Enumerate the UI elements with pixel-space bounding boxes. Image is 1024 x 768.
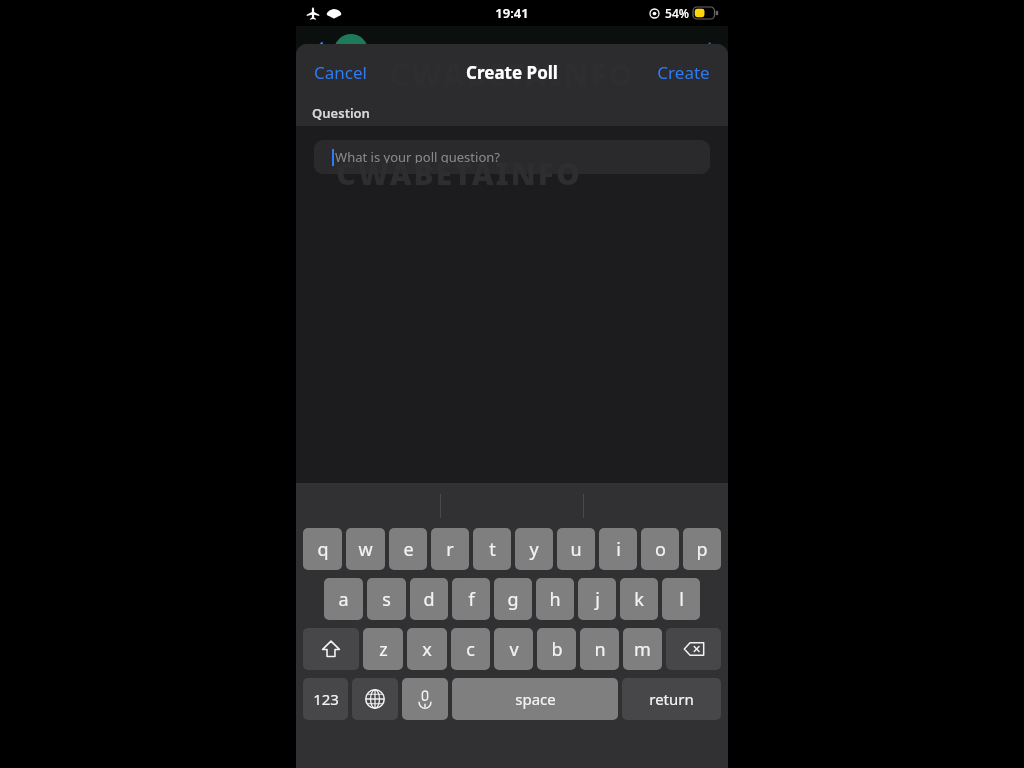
button[interactable]: e xyxy=(389,528,427,570)
staticText: What is your poll question? xyxy=(335,148,500,166)
staticText: s xyxy=(382,587,391,612)
staticText: 19:41 xyxy=(495,4,529,22)
staticText: g xyxy=(507,587,519,612)
button[interactable]: v xyxy=(494,628,533,670)
staticText: j xyxy=(595,587,600,612)
staticText: Question xyxy=(312,104,370,122)
button[interactable]: g xyxy=(494,578,532,620)
staticText: d xyxy=(423,587,435,612)
staticText: Cancel xyxy=(314,61,367,84)
button[interactable]: Backspace xyxy=(666,628,721,670)
staticText: e xyxy=(403,537,414,562)
button[interactable]: Switch keyboard xyxy=(352,678,398,720)
button[interactable]: a xyxy=(324,578,363,620)
button[interactable]: q xyxy=(303,528,342,570)
staticText: y xyxy=(529,537,539,562)
staticText: x xyxy=(422,637,432,662)
button[interactable]: j xyxy=(578,578,616,620)
staticText: v xyxy=(509,637,519,662)
staticText: a xyxy=(338,587,349,612)
staticText: l xyxy=(679,587,684,612)
button[interactable]: return xyxy=(622,678,721,720)
button[interactable]: What is your poll question? xyxy=(314,140,710,174)
button[interactable]: u xyxy=(557,528,595,570)
staticText: m xyxy=(634,637,651,662)
staticText: q xyxy=(317,537,329,562)
button[interactable]: s xyxy=(367,578,406,620)
button[interactable]: 123 xyxy=(303,678,348,720)
button[interactable]: k xyxy=(620,578,658,620)
button[interactable]: y xyxy=(515,528,553,570)
button[interactable]: d xyxy=(410,578,448,620)
staticText: i xyxy=(616,537,621,562)
button[interactable]: Cancel xyxy=(296,49,385,96)
button[interactable]: o xyxy=(641,528,679,570)
staticText: b xyxy=(551,637,563,662)
staticText: h xyxy=(549,587,561,612)
button[interactable]: space xyxy=(452,678,618,720)
staticText: 54% xyxy=(665,5,689,21)
button[interactable]: n xyxy=(580,628,619,670)
staticText: z xyxy=(379,637,388,662)
button[interactable]: m xyxy=(623,628,662,670)
staticText: u xyxy=(570,537,582,562)
button[interactable]: b xyxy=(537,628,576,670)
staticText: 123 xyxy=(313,689,339,709)
button[interactable]: r xyxy=(431,528,469,570)
staticText: n xyxy=(594,637,606,662)
button[interactable]: w xyxy=(346,528,385,570)
staticText: Create Poll xyxy=(466,61,558,84)
staticText: CWABETAINFO xyxy=(336,153,582,194)
button[interactable]: f xyxy=(452,578,490,620)
button[interactable]: Dictate xyxy=(402,678,448,720)
button[interactable]: Shift xyxy=(303,628,359,670)
staticText: return xyxy=(649,689,694,709)
button[interactable]: l xyxy=(662,578,700,620)
staticText: w xyxy=(358,537,373,562)
staticText: Create xyxy=(657,61,710,84)
button[interactable]: Create xyxy=(639,49,728,96)
staticText: c xyxy=(466,637,475,662)
button[interactable]: t xyxy=(473,528,511,570)
button[interactable]: i xyxy=(599,528,637,570)
staticText: space xyxy=(515,689,556,709)
button[interactable]: c xyxy=(451,628,490,670)
staticText: r xyxy=(446,537,454,562)
staticText: k xyxy=(634,587,644,612)
staticText: CWABETAINFO xyxy=(389,54,635,95)
button[interactable]: z xyxy=(363,628,403,670)
button[interactable]: x xyxy=(407,628,447,670)
button[interactable]: h xyxy=(536,578,574,620)
staticText: t xyxy=(489,537,496,562)
staticText: p xyxy=(696,537,708,562)
button[interactable]: p xyxy=(683,528,721,570)
staticText: f xyxy=(468,587,475,612)
staticText: o xyxy=(655,537,666,562)
